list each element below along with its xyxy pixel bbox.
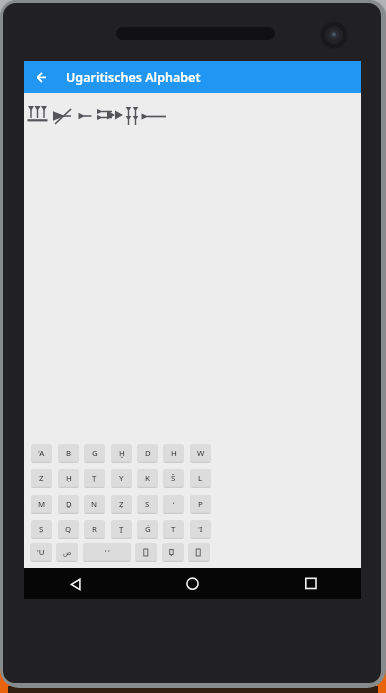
staticText: 'I [198, 524, 203, 535]
button[interactable]: 'U [30, 543, 52, 562]
button[interactable]: R [84, 520, 105, 539]
button[interactable]: G [84, 444, 105, 463]
button[interactable]: Š [163, 469, 184, 488]
button[interactable]: L [190, 469, 211, 488]
staticText: S [145, 499, 150, 510]
staticText: Ḥ [66, 473, 72, 484]
button[interactable]: P [190, 495, 211, 514]
staticText: Ugaritisches Alphabet [66, 69, 201, 86]
staticText: Ġ [145, 524, 151, 535]
button[interactable] [52, 568, 98, 599]
button[interactable] [288, 568, 334, 599]
button[interactable]: Ṯ [111, 520, 132, 539]
button[interactable] [24, 61, 56, 93]
button[interactable]: D [137, 444, 158, 463]
button[interactable]: B [58, 444, 79, 463]
button[interactable]: H [163, 444, 184, 463]
button[interactable]: K [137, 469, 158, 488]
button[interactable]: ʼ ʼ [83, 543, 131, 562]
staticText: Ṯ [119, 524, 124, 535]
button[interactable]: Ẓ [111, 495, 132, 514]
button[interactable]: Ḏ [58, 495, 79, 514]
staticText: Ẓ [119, 499, 124, 510]
staticText: Y [119, 473, 124, 484]
staticText: W [197, 448, 205, 459]
button[interactable] [162, 543, 184, 562]
button[interactable]: Z [31, 469, 52, 488]
staticText: T [171, 524, 176, 535]
button[interactable]: Ḥ [58, 469, 79, 488]
button[interactable]: Ġ [137, 520, 158, 539]
button[interactable]: Ṣ [31, 520, 52, 539]
staticText: P [198, 499, 203, 510]
staticText: ʼ ʼ [105, 548, 110, 558]
staticText: ʻ [173, 499, 175, 510]
button[interactable]: 'A [31, 444, 52, 463]
staticText: H [171, 448, 177, 459]
staticText: G [92, 448, 98, 459]
staticText: Š [171, 473, 176, 484]
button[interactable]: ض [56, 543, 78, 562]
staticText: D [145, 448, 151, 459]
staticText: N [91, 499, 98, 510]
button[interactable]: Ḫ [111, 444, 132, 463]
button[interactable] [188, 543, 210, 562]
button[interactable]: S [137, 495, 158, 514]
staticText: K [145, 473, 150, 484]
staticText: Z [39, 473, 44, 484]
button[interactable]: Q [58, 520, 79, 539]
button[interactable] [135, 543, 157, 562]
staticText: B [66, 448, 72, 459]
staticText: L [198, 473, 203, 484]
staticText: Q [65, 524, 72, 535]
button[interactable] [169, 568, 215, 599]
button[interactable]: Ṭ [84, 469, 105, 488]
staticText: M [38, 499, 46, 510]
staticText: Ṭ [92, 473, 97, 484]
staticText: Ḏ [66, 499, 72, 510]
button[interactable]: T [163, 520, 184, 539]
button[interactable]: ʻ [163, 495, 184, 514]
staticText: ض [63, 549, 72, 557]
button[interactable]: Y [111, 469, 132, 488]
button[interactable]: W [190, 444, 211, 463]
button[interactable]: M [31, 495, 52, 514]
button[interactable]: 'I [190, 520, 211, 539]
staticText: 'U [37, 547, 45, 558]
staticText: Ḫ [119, 448, 125, 459]
button[interactable]: N [84, 495, 105, 514]
staticText: R [92, 524, 97, 535]
staticText: Ṣ [39, 524, 44, 535]
staticText: 'A [38, 448, 45, 459]
